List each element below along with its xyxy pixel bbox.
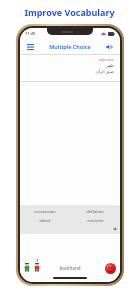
staticText: ضيق الرأي <box>95 69 114 75</box>
button[interactable]: dated <box>20 216 70 225</box>
staticText: deflation <box>86 209 104 215</box>
button[interactable]: deflation <box>70 207 120 216</box>
staticText: ظهر <box>105 63 114 68</box>
staticText: 1 <box>36 258 39 263</box>
staticText: Improve Vocabulary <box>24 6 115 18</box>
button[interactable]: Speak <box>112 226 117 231</box>
staticText: Multiple Choice <box>49 43 91 50</box>
staticText: crustacean <box>34 209 56 215</box>
staticText: adjective <box>99 57 114 62</box>
button[interactable]: crustacean <box>20 207 70 216</box>
staticText: 11:49 <box>25 31 36 36</box>
button[interactable]: envision <box>70 216 120 225</box>
button[interactable]: Menu <box>25 42 35 52</box>
staticText: dated <box>39 218 51 224</box>
button[interactable]: Player <box>105 263 116 274</box>
staticText: backhand <box>59 265 81 271</box>
staticText: envision <box>87 218 104 224</box>
button[interactable]: Sound <box>105 42 115 52</box>
